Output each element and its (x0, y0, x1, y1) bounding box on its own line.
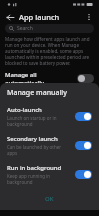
button[interactable]: Spotify (0, 104, 99, 123)
staticText: Manage manually (21, 96, 59, 102)
button[interactable]: OK (35, 192, 64, 206)
button[interactable]: Run in background (0, 160, 99, 189)
button[interactable]: Connect (0, 85, 99, 104)
button[interactable] (77, 74, 94, 83)
staticText: OK (45, 195, 54, 203)
button[interactable] (77, 109, 94, 118)
button[interactable] (75, 112, 92, 121)
staticText: Manage all automatically (5, 71, 77, 85)
staticText: Launch on startup or in background (7, 115, 71, 127)
staticText: Secondary launch (7, 135, 58, 143)
staticText: Manage how different apps launch and run… (5, 36, 94, 66)
staticText: Spotify (21, 106, 41, 114)
button[interactable] (75, 170, 92, 179)
button[interactable] (77, 166, 94, 175)
staticText: Manage automatically (21, 172, 68, 178)
button[interactable]: More options (83, 11, 95, 23)
staticText: Manage automatically (21, 134, 68, 140)
staticText: AccuBattery (21, 163, 56, 171)
staticText: Can be launched by other apps (7, 144, 71, 156)
staticText: Auto-launch (7, 106, 42, 114)
staticText: App launch (19, 12, 60, 22)
staticText: 3Play (21, 125, 37, 133)
button[interactable] (75, 141, 92, 150)
button[interactable]: AccuBattery (0, 161, 99, 180)
staticText: Manage manually (21, 115, 59, 121)
button[interactable]: Search (5, 24, 94, 33)
staticText: Run in background (7, 164, 62, 172)
button[interactable]: Back (4, 11, 16, 23)
button[interactable]: Secondary launch (0, 131, 99, 160)
staticText: Manage manually (7, 88, 67, 98)
button[interactable]: Accor Hotels (0, 142, 99, 161)
staticText: Search (17, 25, 33, 32)
button[interactable]: Auto-launch (0, 102, 99, 131)
staticText: Connect (21, 87, 45, 95)
staticText: Keep app running in background (7, 173, 71, 185)
button[interactable]: 3Play (0, 123, 99, 142)
staticText: Accor Hotels (21, 144, 58, 152)
button[interactable] (77, 147, 94, 156)
button[interactable]: Manage all automatically (0, 71, 99, 85)
